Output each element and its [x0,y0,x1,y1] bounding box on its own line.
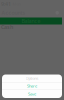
button[interactable]: Share [2,82,62,89]
button[interactable]: Save [2,90,62,98]
staticText: Options [25,76,38,81]
staticText: Balance [21,17,40,25]
staticText: Save [28,91,36,97]
staticText: Share [27,83,37,89]
staticText: Cash [1,23,13,31]
